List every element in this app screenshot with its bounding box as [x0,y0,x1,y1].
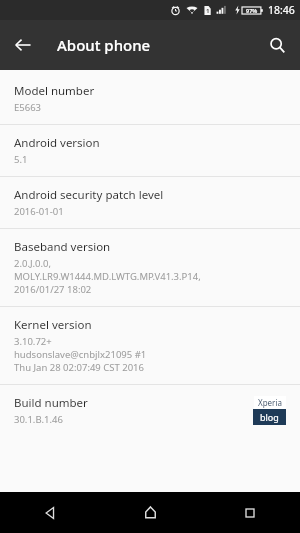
staticText: Kernel version [14,317,92,333]
button[interactable]: Android security patch level [0,177,300,228]
staticText: 18:46 [268,3,295,17]
staticText: 3.10.72+ [14,335,52,348]
staticText: Model number [14,83,95,99]
staticText: blog [260,411,279,423]
button[interactable]: Baseband version [0,229,300,306]
button[interactable]: Back [0,22,46,68]
staticText: Build number [14,395,88,411]
button[interactable]: Model number [0,75,300,124]
staticText: About phone [57,35,151,55]
staticText: 5.1 [14,153,28,166]
staticText: Baseband version [14,239,111,255]
staticText: Android version [14,135,100,151]
staticText: Thu Jan 28 02:07:49 CST 2016 [14,361,144,374]
button[interactable]: Home [100,492,200,533]
staticText: E5663 [14,101,42,114]
button[interactable]: Recents [200,492,300,533]
staticText: 2016-01-01 [14,205,64,218]
staticText: Xperia [258,397,282,408]
staticText: 2.0.J.0.0, [14,257,52,270]
button[interactable]: Build number [0,385,300,436]
staticText: 1 [206,7,210,15]
staticText: MOLY.LR9.W1444.MD.LWTG.MP.V41.3.P14, [14,270,201,283]
staticText: Android security patch level [14,187,164,203]
button[interactable]: Kernel version [0,307,300,384]
staticText: 30.1.B.1.46 [14,413,63,426]
button[interactable]: Search [254,22,300,68]
staticText: 2016/01/27 18:02 [14,283,92,296]
button[interactable]: Back [0,492,100,533]
staticText: hudsonslave@cnbjlx21095 #1 [14,348,147,361]
button[interactable]: Android version [0,125,300,176]
staticText: 97% [246,7,258,14]
